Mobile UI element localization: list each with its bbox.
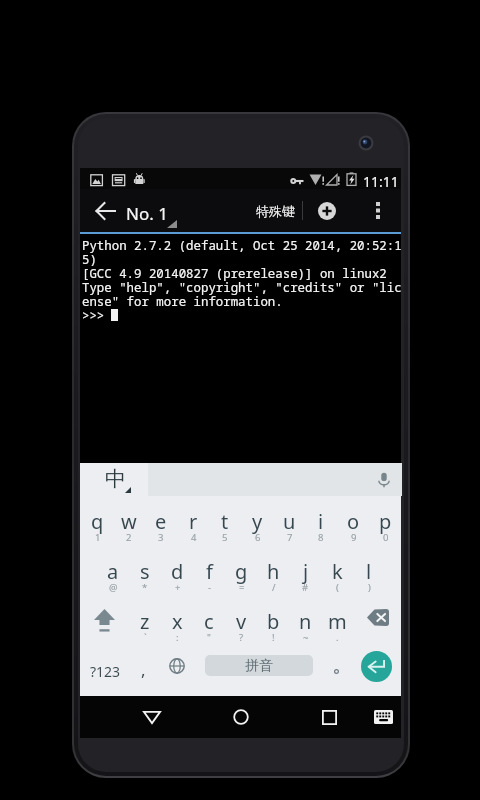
button[interactable]: Voice input [367,463,401,496]
button[interactable]: a [97,546,129,596]
staticText: o [347,508,360,535]
button[interactable]: i [305,496,337,546]
staticText: + [175,581,181,592]
button[interactable]: u [273,496,305,546]
staticText: 5) [82,251,97,268]
button[interactable]: p [369,496,401,546]
staticText: w [121,508,137,535]
staticText: k [332,558,343,585]
staticText: - [208,581,212,592]
staticText: ) [368,581,371,592]
button[interactable]: n [289,596,321,646]
staticText: Python 2.7.2 (default, Oct 25 2014, 20:5… [82,237,402,254]
staticText: n [299,608,312,635]
button[interactable]: Language 中 [80,463,149,496]
staticText: x [172,608,183,635]
staticText: 拼音 [245,657,273,675]
button[interactable]: z [129,596,161,646]
button[interactable]: k [321,546,353,596]
button[interactable]: t [209,496,241,546]
staticText: p [379,508,392,535]
button[interactable]: e [145,496,177,546]
staticText: u [283,508,296,535]
button[interactable]: x [161,596,193,646]
staticText: e [155,508,167,535]
button[interactable]: y [241,496,273,546]
staticText: . [336,631,339,642]
staticText: Type "help", "copyright", "credits" or "… [82,279,402,296]
button[interactable]: s [129,546,161,596]
staticText: t [221,508,229,535]
staticText: g [235,558,248,585]
staticText: f [206,558,213,585]
staticText: 2 [126,531,132,542]
staticText: i [318,508,324,535]
staticText: : [176,631,179,642]
button[interactable]: l [353,546,385,596]
staticText: ~ [303,631,309,642]
staticText: # [302,581,309,592]
button[interactable]: o [337,496,369,546]
staticText: r [189,508,198,535]
button[interactable]: Shift [89,596,122,646]
button[interactable]: Home [219,696,263,738]
staticText: 中 [105,466,126,492]
staticText: a [107,558,119,585]
button[interactable]: w [113,496,145,546]
staticText: 9 [351,531,357,542]
button[interactable]: Backspace [361,596,395,646]
button[interactable]: m [321,596,353,646]
staticText: No. 1 [126,202,168,225]
button[interactable] [323,646,349,696]
button[interactable]: b [257,596,289,646]
button[interactable]: No. 1 [125,189,235,232]
staticText: 11:11 [363,172,399,191]
staticText: c [204,608,214,635]
button[interactable]: Change keyboard [162,646,192,696]
staticText: z [140,608,150,635]
staticText: s [140,558,150,585]
staticText: 1 [95,531,101,542]
button[interactable]: g [225,546,257,596]
staticText: @ [109,581,118,592]
staticText: ! [272,631,275,642]
staticText: 0 [383,531,389,542]
button[interactable]: Back [86,189,126,232]
button[interactable]: 拼音 [205,655,313,676]
button[interactable]: Back [130,696,174,738]
staticText: m [328,608,347,635]
button[interactable]: ?123 [85,646,126,696]
button[interactable]: v [225,596,257,646]
button[interactable]: More options [360,189,396,232]
staticText: >>> [82,307,105,324]
button[interactable]: Switch keyboard [364,696,402,738]
staticText: 7 [287,531,293,542]
staticText: = [239,581,245,592]
button[interactable]: f [193,546,225,596]
staticText: b [267,608,280,635]
staticText: q [91,508,104,535]
button[interactable]: 特殊键 [250,189,300,232]
staticText: ` [144,631,147,642]
button[interactable]: Add [307,189,347,232]
staticText: j [303,558,309,585]
staticText: 5 [222,531,228,542]
staticText: v [236,608,247,635]
button[interactable]: Enter [361,651,392,682]
staticText: , [141,658,146,681]
button[interactable]: q [81,496,113,546]
staticText: / [272,581,276,592]
button[interactable]: Recents [307,696,351,738]
staticText: " [207,631,211,642]
button[interactable]: c [193,596,225,646]
button[interactable]: , [130,646,156,696]
staticText: y [252,508,263,535]
staticText: d [171,558,184,585]
button[interactable]: r [177,496,209,546]
staticText: 4 [191,531,197,542]
staticText: 6 [255,531,261,542]
button[interactable]: j [289,546,321,596]
button[interactable]: h [257,546,289,596]
button[interactable]: d [161,546,193,596]
staticText: 特殊键 [256,203,295,219]
